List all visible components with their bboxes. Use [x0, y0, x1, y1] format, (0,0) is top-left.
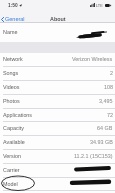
staticText: Verizon Wireless	[72, 56, 113, 62]
staticText: About	[50, 16, 66, 22]
button[interactable]: Capacity	[0, 122, 115, 136]
staticText: 72	[107, 112, 113, 118]
button[interactable]: Songs	[0, 67, 115, 81]
button[interactable]: Version	[0, 150, 115, 164]
button[interactable]: Network	[0, 53, 115, 67]
button[interactable]: General	[1, 16, 25, 22]
staticText: 1:50	[8, 3, 18, 8]
staticText: Applications	[3, 112, 33, 118]
staticText: LTE	[96, 3, 103, 7]
staticText: 2	[110, 70, 113, 76]
staticText: Name	[3, 29, 18, 35]
staticText: Photos	[3, 98, 20, 104]
button[interactable]: Photos	[0, 95, 115, 109]
other: Redacted personal information	[0, 0, 115, 193]
staticText: 3,495	[99, 98, 113, 104]
staticText: Model	[3, 181, 18, 187]
staticText: Carrier	[3, 167, 20, 173]
button[interactable]: Applications	[0, 109, 115, 122]
button[interactable]: Videos	[0, 81, 115, 95]
staticText: Version	[3, 153, 21, 159]
staticText: General	[5, 16, 25, 22]
staticText: 64 GB	[97, 125, 113, 131]
staticText: 108	[104, 84, 113, 90]
staticText: Capacity	[3, 125, 24, 131]
button[interactable]: Carrier	[0, 164, 115, 178]
staticText: 11.2.1 (15C153)	[74, 153, 113, 159]
button[interactable]: Name	[0, 23, 115, 42]
staticText: Videos	[3, 84, 20, 90]
staticText: Songs	[3, 70, 19, 76]
staticText: Network	[3, 56, 23, 62]
button[interactable]: Model	[0, 178, 115, 191]
staticText: Available	[3, 139, 25, 145]
staticText: 34.93 GB	[90, 139, 113, 145]
button[interactable]: Available	[0, 136, 115, 150]
